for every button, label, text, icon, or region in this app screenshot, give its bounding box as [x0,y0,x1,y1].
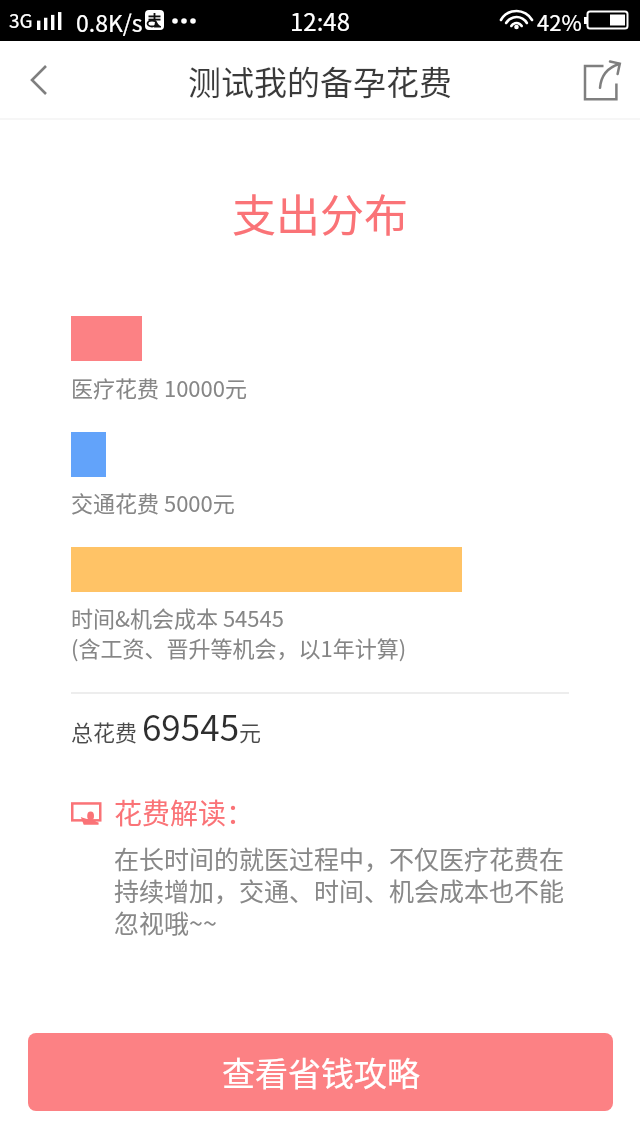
staticText: 查看省钱攻略 [222,1048,420,1096]
button[interactable]: Back [6,41,58,93]
staticText: 12:48 [290,3,350,38]
staticText: 医疗花费 10000元 [71,371,247,403]
staticText: 42% [537,5,582,37]
button[interactable]: Share [578,56,628,106]
staticText: 支出分布 [232,181,408,245]
staticText: 3G [9,6,33,34]
staticText: 花费解读： [114,792,255,833]
staticText: 交通花费 5000元 [71,486,235,518]
staticText: (含工资、晋升等机会，以1年计算) [71,631,407,663]
staticText: 时间&机会成本 54545 [71,601,284,633]
staticText: 总花费 69545元 [71,700,262,751]
staticText: 0.8K/s [76,5,143,38]
staticText: 在长时间的就医过程中，不仅医疗花费在持续增加，交通、时间、机会成本也不能忽视哦~… [114,840,574,940]
button[interactable]: 查看省钱攻略 [28,1033,613,1111]
staticText: 测试我的备孕花费 [188,57,452,105]
